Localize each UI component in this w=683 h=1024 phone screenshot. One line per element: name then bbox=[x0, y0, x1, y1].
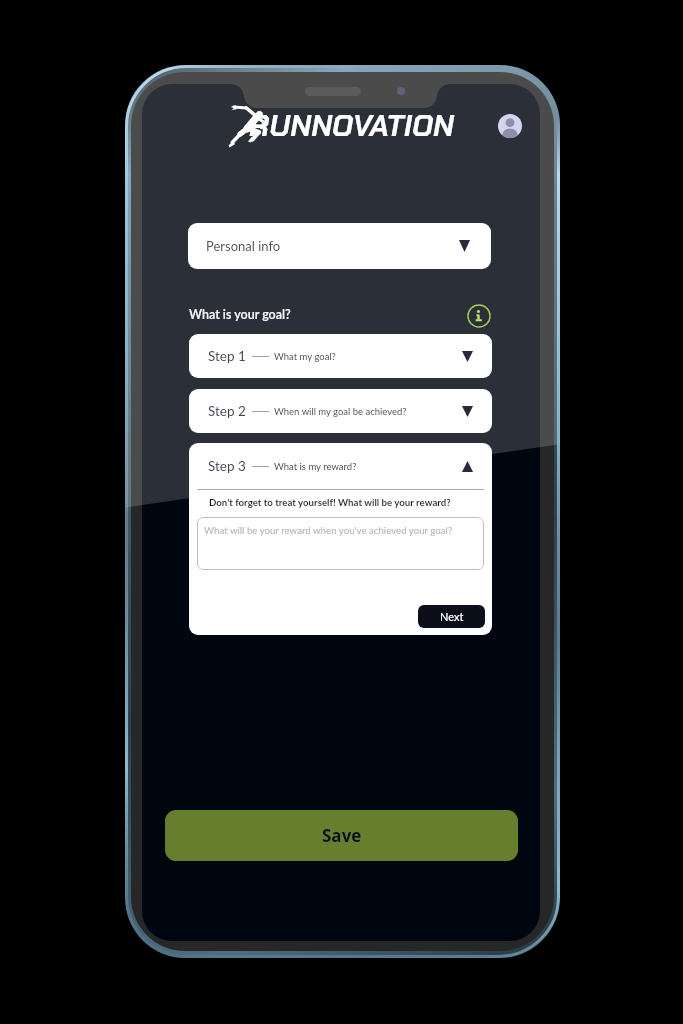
staticText: Step 2 bbox=[208, 403, 246, 419]
button[interactable]: Next bbox=[418, 605, 485, 628]
staticText: What my goal? bbox=[274, 351, 336, 362]
button[interactable]: Information bbox=[467, 304, 491, 328]
staticText: What is your goal? bbox=[189, 307, 291, 322]
button[interactable]: Step 3 bbox=[189, 443, 492, 489]
button[interactable]: What will be your reward when you've ach… bbox=[197, 517, 484, 570]
staticText: What is my reward? bbox=[274, 461, 357, 472]
staticText: When will my goal be achieved? bbox=[274, 406, 407, 417]
staticText: Next bbox=[440, 610, 464, 623]
button[interactable]: Personal info bbox=[188, 223, 491, 269]
button[interactable]: Step 1 bbox=[189, 334, 492, 378]
staticText: Don't forget to treat yourself! What wil… bbox=[209, 496, 451, 508]
button[interactable]: Profile bbox=[498, 114, 522, 138]
staticText: Step 1 bbox=[208, 348, 246, 364]
staticText: Personal info bbox=[206, 238, 281, 254]
staticText: Save bbox=[322, 824, 362, 847]
button[interactable]: Save bbox=[165, 810, 518, 861]
staticText: Step 3 bbox=[208, 458, 246, 474]
staticText: What will be your reward when you've ach… bbox=[204, 524, 453, 536]
staticText: RUNNOVATION bbox=[249, 106, 454, 145]
button[interactable]: Step 2 bbox=[189, 389, 492, 433]
